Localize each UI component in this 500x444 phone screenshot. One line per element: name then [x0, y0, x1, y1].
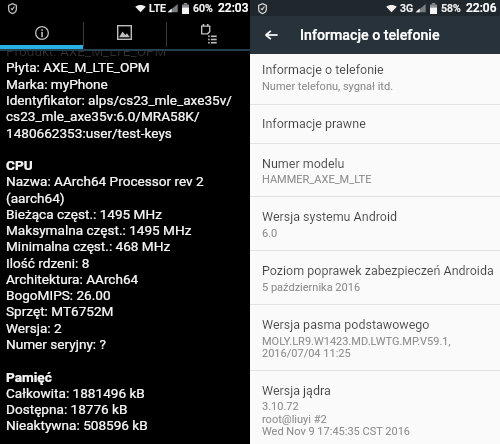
staticText: LTE [149, 2, 166, 14]
staticText: 3G [400, 2, 414, 14]
staticText: Informacje o telefonie [300, 27, 440, 44]
staticText: CPU [6, 157, 33, 173]
staticText: (aarch64) [6, 190, 65, 206]
staticText: Produkt: AXE_M_LTE_OPM [6, 43, 167, 59]
staticText: Maksymalna częst.: 1495 MHz [6, 222, 192, 238]
staticText: Minimalna częst.: 468 MHz [6, 238, 171, 254]
button[interactable]: Informacje [0, 20, 83, 49]
staticText: 5 października 2016 [262, 281, 361, 294]
staticText: Wersja pasma podstawowego [262, 317, 430, 332]
staticText: MOLY.LR9.W1423.MD.LWTG.MP.V59.1, [262, 335, 451, 348]
button[interactable]: Numer modelu [250, 143, 500, 196]
staticText: Informacje o telefonie [262, 62, 384, 77]
staticText: Ilość rdzeni: 8 [6, 255, 90, 271]
staticText: 1480662353:user/test-keys [6, 125, 172, 141]
button[interactable]: Raport [166, 20, 250, 49]
staticText: 58% [441, 2, 461, 14]
staticText: 3.10.72 [262, 400, 299, 413]
staticText: BogoMIPS: 26.00 [6, 287, 111, 303]
staticText: cs23_mle_axe35v:6.0/MRA58K/ [6, 108, 200, 124]
staticText: Bieżąca częst.: 1495 MHz [6, 206, 162, 222]
button[interactable]: Wersja systemu Android [250, 196, 500, 250]
staticText: HAMMER_AXE_M_LTE [262, 173, 372, 186]
staticText: Sprzęt: MT6752M [6, 303, 114, 319]
button[interactable]: Poziom poprawek zabezpieczeń Androida [250, 250, 500, 304]
staticText: 2016/07/04 11:25 [262, 347, 351, 360]
staticText: Płyta: AXE_M_LTE_OPM [6, 59, 150, 75]
staticText: root@liuyi #2 [262, 413, 327, 426]
staticText: 6.0 [262, 227, 278, 240]
staticText: 22:03 [218, 1, 249, 15]
staticText: Numer seryjny: ? [6, 336, 106, 352]
staticText: Poziom poprawek zabezpieczeń Androida [262, 263, 494, 278]
staticText: Całkowita: 1881496 kB [6, 385, 145, 401]
staticText: Nazwa: AArch64 Processor rev 2 [6, 173, 204, 189]
staticText: Wersja jądra [262, 383, 331, 398]
staticText: 22:06 [466, 1, 497, 15]
button[interactable]: Informacje prawne [250, 104, 500, 143]
staticText: Pamięć [6, 369, 52, 385]
staticText: Wersja systemu Android [262, 209, 398, 224]
button[interactable]: Wersja pasma podstawowego [250, 304, 500, 370]
staticText: Identyfikator: alps/cs23_mle_axe35v/ [6, 92, 232, 108]
button[interactable]: Wstecz [250, 16, 292, 54]
staticText: 60% [193, 2, 213, 14]
staticText: Numer modelu [262, 156, 345, 171]
staticText: Marka: myPhone [6, 76, 108, 92]
button[interactable]: Zdjęcia [83, 20, 166, 49]
button[interactable]: Wersja jądra [250, 370, 500, 444]
staticText: Informacje prawne [262, 116, 366, 131]
staticText: Nieaktywna: 508596 kB [6, 417, 148, 433]
staticText: Wed Nov 9 17:45:35 CST 2016 [262, 425, 411, 438]
button[interactable]: Informacje o telefonie [250, 54, 500, 104]
staticText: Numer telefonu, sygnał itd. [262, 80, 394, 93]
staticText: Architektura: AArch64 [6, 271, 139, 287]
staticText: Dostępna: 18776 kB [6, 401, 128, 417]
staticText: Wersja: 2 [6, 320, 62, 336]
